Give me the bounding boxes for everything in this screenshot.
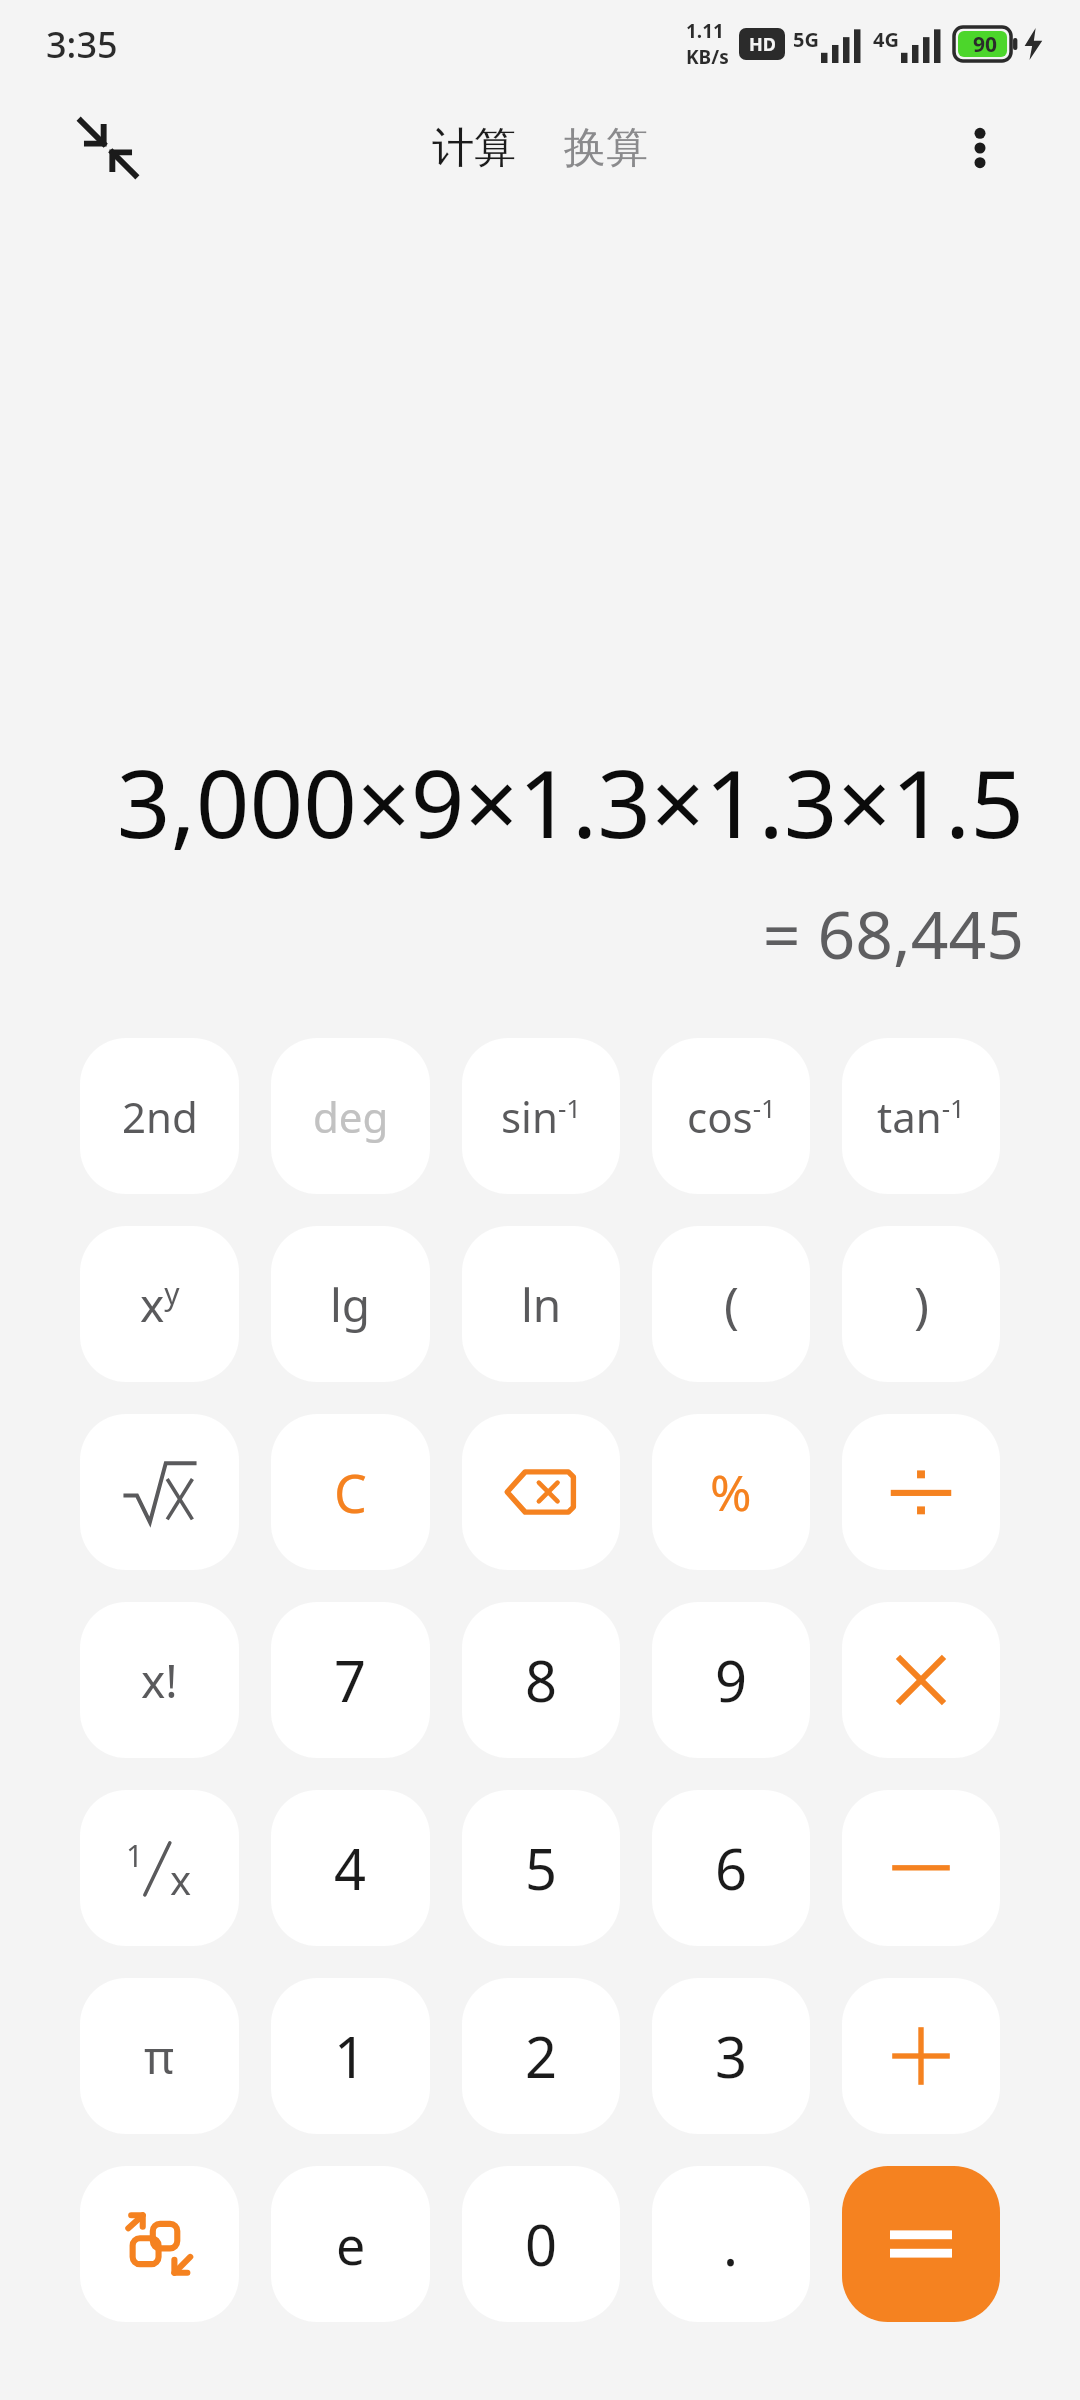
staticText: tan-1	[877, 1088, 965, 1145]
staticText: 3:35	[46, 20, 118, 69]
button[interactable]: 2nd	[80, 1038, 239, 1194]
button[interactable]: Square root	[80, 1414, 239, 1570]
button[interactable]: Multiply	[842, 1602, 1000, 1758]
staticText: deg	[313, 1088, 389, 1145]
button[interactable]: Equals	[842, 2166, 1000, 2322]
staticText: 3	[715, 2018, 748, 2094]
button[interactable]: deg	[271, 1038, 430, 1194]
button[interactable]: Backspace	[462, 1414, 620, 1570]
button[interactable]: xy	[80, 1226, 239, 1382]
staticText: %	[710, 1458, 752, 1526]
staticText: 5G	[793, 26, 819, 53]
button[interactable]: lg	[271, 1226, 430, 1382]
staticText: .	[723, 2206, 739, 2282]
staticText: 7	[334, 1642, 367, 1718]
staticText: cos-1	[687, 1088, 776, 1145]
staticText: 计算	[432, 122, 516, 175]
button[interactable]: Plus	[842, 1978, 1000, 2134]
button[interactable]: x!	[80, 1602, 239, 1758]
staticText: π	[144, 2025, 175, 2088]
button[interactable]: ln	[462, 1226, 620, 1382]
staticText: 0	[525, 2206, 558, 2282]
staticText: x	[170, 1852, 192, 1906]
staticText: 2	[525, 2018, 558, 2094]
button[interactable]: More options	[936, 104, 1024, 192]
staticText: 1	[334, 2018, 367, 2094]
button[interactable]: 4	[271, 1790, 430, 1946]
button[interactable]: e	[271, 2166, 430, 2322]
button[interactable]: 0	[462, 2166, 620, 2322]
staticText: KB/s	[686, 44, 729, 70]
staticText: 8	[525, 1642, 558, 1718]
staticText: lg	[330, 1273, 371, 1336]
button[interactable]: π	[80, 1978, 239, 2134]
button[interactable]: 7	[271, 1602, 430, 1758]
staticText: 1.11	[686, 18, 724, 44]
button[interactable]: 换算	[554, 110, 658, 187]
button[interactable]: 5	[462, 1790, 620, 1946]
staticText: ln	[521, 1273, 562, 1336]
button[interactable]: 3	[652, 1978, 810, 2134]
button[interactable]: Divide	[842, 1414, 1000, 1570]
staticText: 6	[715, 1830, 748, 1906]
staticText: 5	[525, 1830, 558, 1906]
staticText: sin-1	[501, 1088, 582, 1145]
button[interactable]: C	[271, 1414, 430, 1570]
staticText: HD	[749, 32, 776, 57]
staticText: e	[336, 2209, 366, 2280]
button[interactable]: 6	[652, 1790, 810, 1946]
button[interactable]: 8	[462, 1602, 620, 1758]
button[interactable]: 计算	[422, 110, 526, 187]
button[interactable]: (	[652, 1226, 810, 1382]
button[interactable]: cos-1	[652, 1038, 810, 1194]
button[interactable]: One over x	[80, 1790, 239, 1946]
staticText: 4	[334, 1830, 367, 1906]
staticText: C	[334, 1457, 367, 1528]
button[interactable]: Minus	[842, 1790, 1000, 1946]
staticText: = 68,445	[762, 888, 1024, 978]
button[interactable]: )	[842, 1226, 1000, 1382]
staticText: 2nd	[122, 1088, 198, 1145]
staticText: 4G	[873, 26, 899, 53]
button[interactable]: 2	[462, 1978, 620, 2134]
button[interactable]: 1	[271, 1978, 430, 2134]
staticText: (	[724, 1270, 739, 1338]
button[interactable]: %	[652, 1414, 810, 1570]
staticText: xy	[140, 1273, 180, 1336]
button[interactable]: 9	[652, 1602, 810, 1758]
staticText: 换算	[564, 122, 648, 175]
staticText: x!	[141, 1649, 178, 1712]
staticText: 1	[126, 1835, 144, 1876]
button[interactable]: .	[652, 2166, 810, 2322]
staticText: 9	[715, 1642, 748, 1718]
staticText: 3,000×9×1.3×1.3×1.5	[116, 738, 1024, 866]
button[interactable]: sin-1	[462, 1038, 620, 1194]
staticText: 90	[973, 30, 998, 59]
button[interactable]: Collapse	[62, 102, 154, 194]
button[interactable]: tan-1	[842, 1038, 1000, 1194]
button[interactable]: Convert	[80, 2166, 239, 2322]
staticText: )	[914, 1270, 929, 1338]
